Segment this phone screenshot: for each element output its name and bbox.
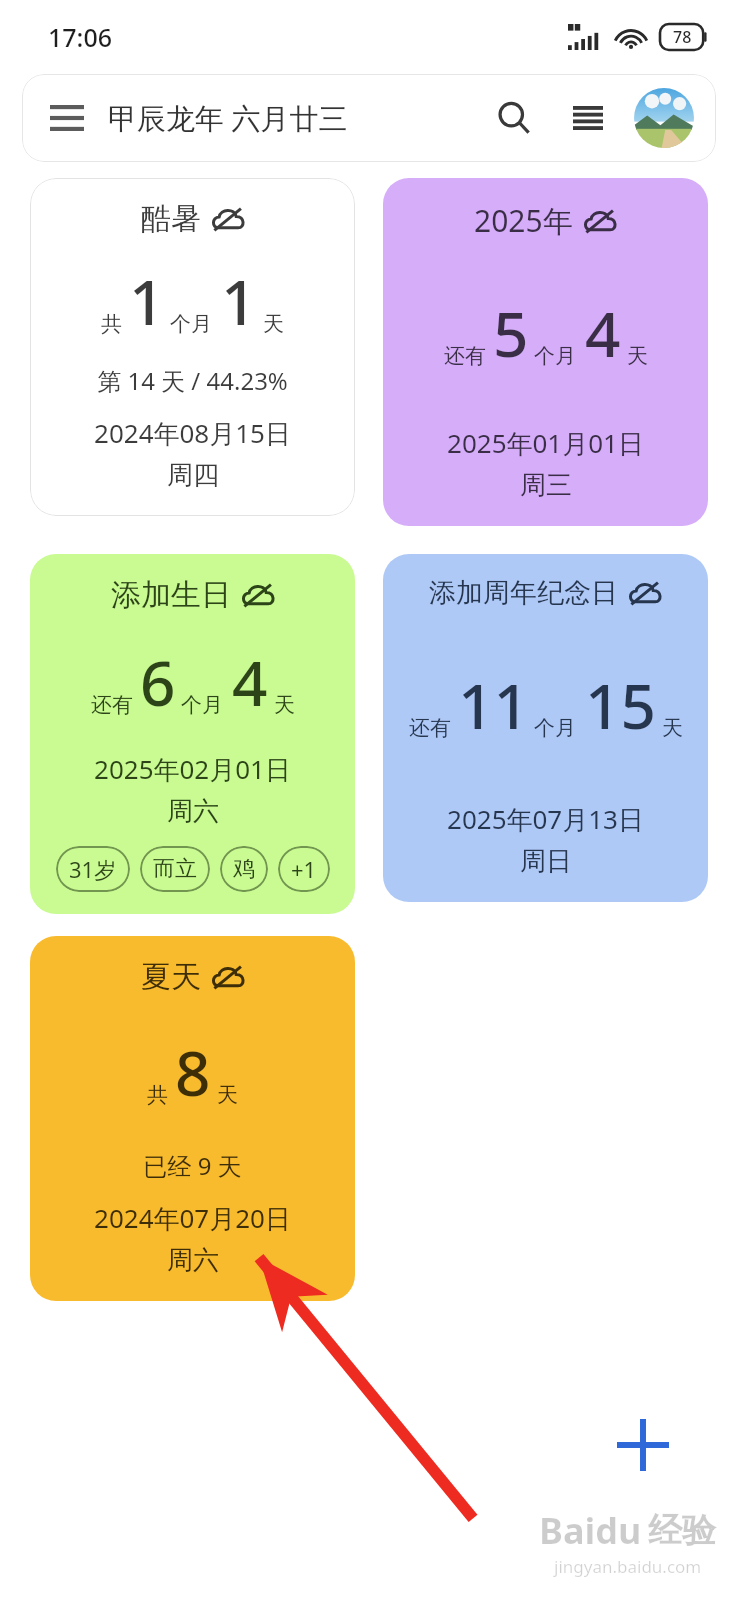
button[interactable]: 而立 <box>140 846 210 892</box>
staticText: 周六 <box>167 795 219 828</box>
staticText: 还有 <box>409 715 451 741</box>
staticText: 2025年01月01日 <box>447 425 644 461</box>
button[interactable]: Search <box>488 92 540 144</box>
staticText: 个月 <box>170 311 212 337</box>
staticText: 2025年07月13日 <box>447 801 644 837</box>
staticText: 酷暑 <box>141 200 201 238</box>
staticText: 1 <box>129 259 165 343</box>
staticText: 夏天 <box>141 958 201 996</box>
staticText: 天 <box>274 692 295 718</box>
staticText: 8 <box>175 1030 211 1114</box>
staticText: 1 <box>221 259 257 343</box>
staticText: 2025年02月01日 <box>94 751 291 787</box>
staticText: 6 <box>140 640 176 724</box>
button[interactable]: 31岁 <box>56 846 130 892</box>
button[interactable]: 鸡 <box>220 846 268 892</box>
staticText: 共 <box>101 311 122 337</box>
staticText: 天 <box>662 715 683 741</box>
staticText: 经验 <box>648 1509 716 1552</box>
staticText: 添加生日 <box>111 576 231 614</box>
staticText: 鸡 <box>233 855 255 883</box>
staticText: 周日 <box>520 845 572 878</box>
staticText: 甲辰龙年 六月廿三 <box>108 98 348 138</box>
button[interactable]: Add <box>588 1390 698 1500</box>
staticText: 天 <box>627 343 648 369</box>
staticText: 4 <box>232 640 268 724</box>
staticText: 天 <box>263 311 284 337</box>
staticText: 78 <box>673 26 692 48</box>
button[interactable]: 添加周年纪念日 <box>383 554 708 902</box>
button[interactable]: Profile <box>634 88 694 148</box>
staticText: 15 <box>585 663 656 747</box>
staticText: 第 14 天 / 44.23% <box>97 364 288 397</box>
staticText: 17:06 <box>48 20 113 54</box>
button[interactable]: 添加生日 <box>30 554 355 914</box>
staticText: 个月 <box>181 692 223 718</box>
staticText: Baidu <box>539 1506 642 1555</box>
staticText: 31岁 <box>69 854 117 884</box>
staticText: 4 <box>585 291 621 375</box>
staticText: 周六 <box>167 1244 219 1277</box>
button[interactable]: 2025年 <box>383 178 708 526</box>
staticText: 周四 <box>167 459 219 492</box>
staticText: 11 <box>458 663 529 747</box>
button[interactable]: Menu <box>44 95 90 141</box>
staticText: 5 <box>493 291 529 375</box>
staticText: 2024年08月15日 <box>94 415 291 451</box>
staticText: 2024年07月20日 <box>94 1200 291 1236</box>
staticText: jingyan.baidu.com <box>554 1555 702 1578</box>
staticText: 已经 9 天 <box>143 1149 242 1182</box>
staticText: 天 <box>217 1082 238 1108</box>
button[interactable]: 酷暑 <box>30 178 355 516</box>
staticText: +1 <box>291 854 317 884</box>
staticText: 添加周年纪念日 <box>429 576 618 610</box>
staticText: 个月 <box>534 715 576 741</box>
staticText: 还有 <box>91 692 133 718</box>
button[interactable]: +1 <box>278 846 330 892</box>
staticText: 周三 <box>520 469 572 502</box>
button[interactable]: List view <box>562 92 614 144</box>
staticText: 共 <box>147 1082 168 1108</box>
staticText: 而立 <box>153 855 197 883</box>
staticText: 2025年 <box>474 200 573 241</box>
staticText: 个月 <box>534 343 576 369</box>
button[interactable]: 夏天 <box>30 936 355 1301</box>
staticText: 还有 <box>444 343 486 369</box>
